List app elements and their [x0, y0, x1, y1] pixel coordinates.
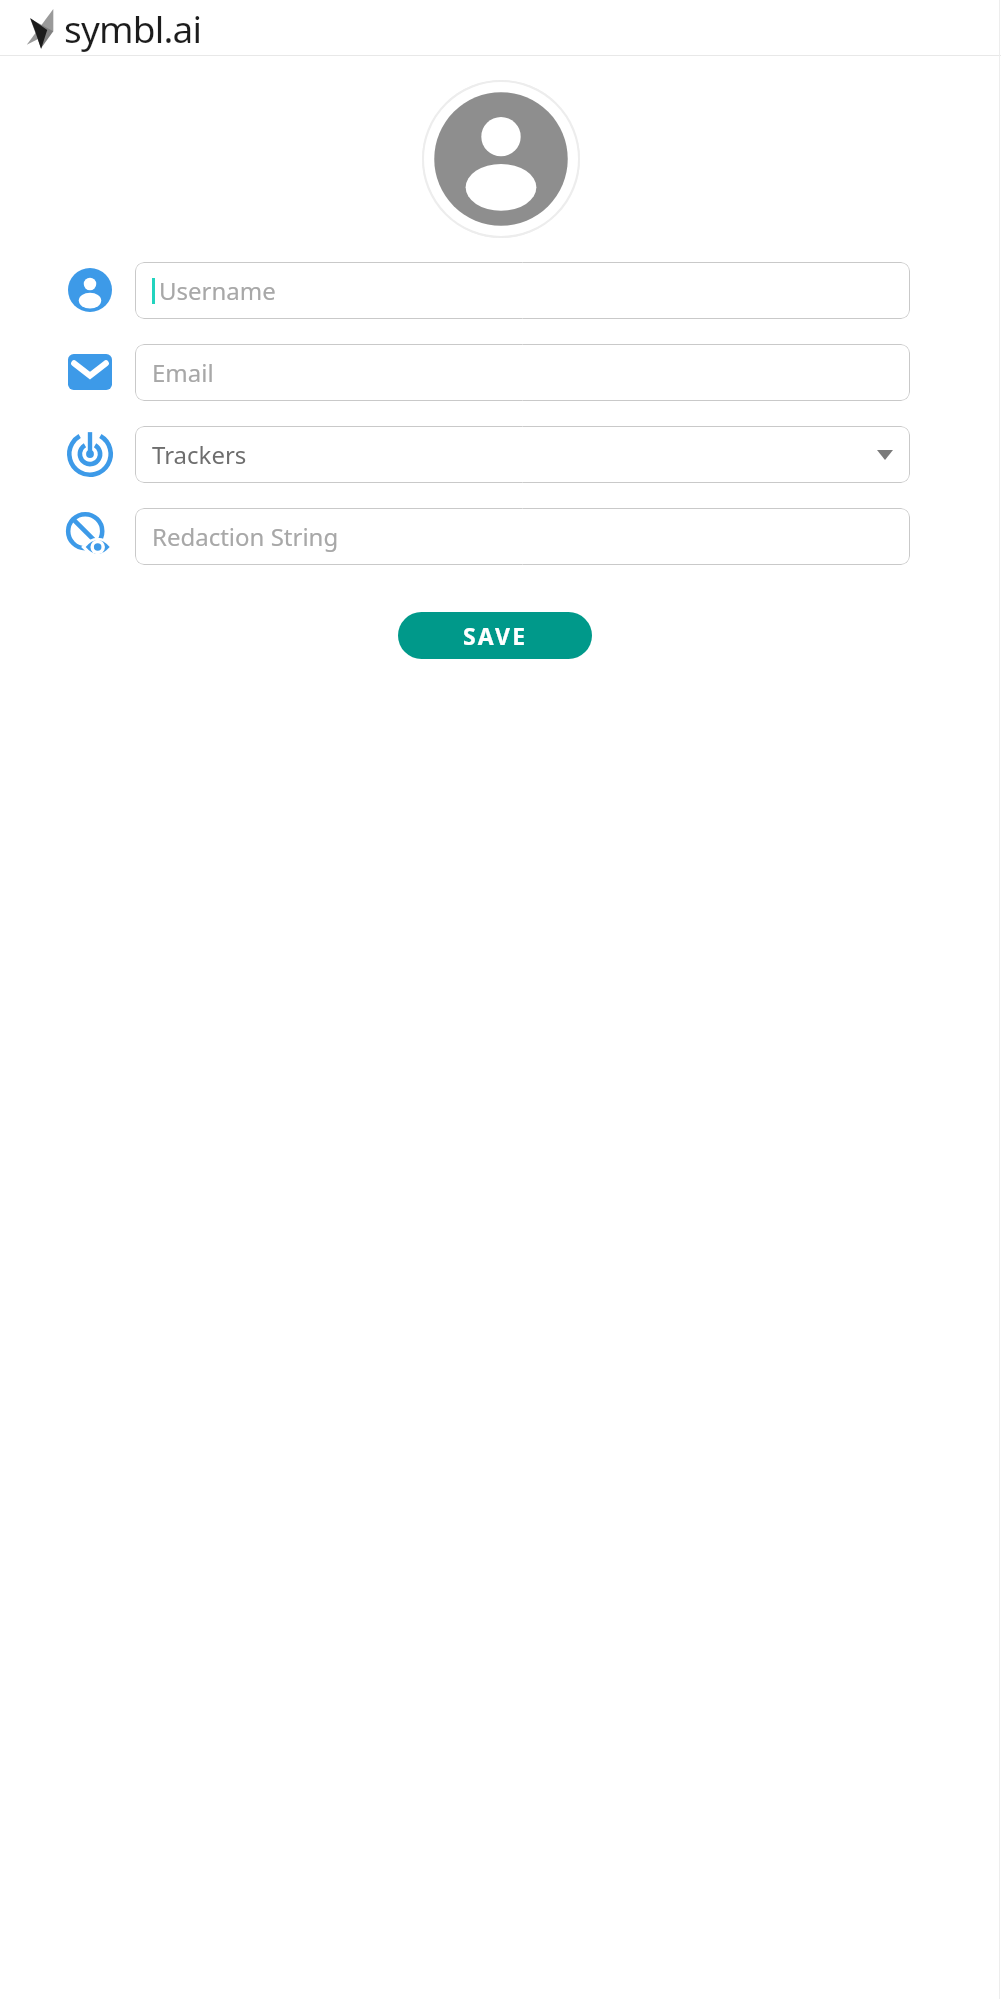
staticText: Redaction String: [152, 520, 893, 553]
staticText: Email: [152, 356, 893, 389]
staticText: symbl.ai: [64, 3, 202, 53]
button[interactable]: Trackers: [66, 430, 114, 478]
button[interactable]: Trackers: [135, 426, 910, 483]
button[interactable]: Username: [135, 262, 910, 319]
button[interactable]: Username: [66, 266, 114, 314]
button[interactable]: Profile photo: [422, 80, 580, 238]
button[interactable]: symbl.ai: [20, 3, 202, 53]
button[interactable]: Redaction String: [135, 508, 910, 565]
button[interactable]: Redaction: [66, 512, 114, 560]
button[interactable]: Email: [135, 344, 910, 401]
button[interactable]: SAVE: [398, 612, 592, 659]
staticText: Username: [159, 274, 893, 307]
staticText: Trackers: [152, 438, 877, 471]
button[interactable]: Email: [66, 348, 114, 396]
staticText: SAVE: [463, 620, 528, 651]
